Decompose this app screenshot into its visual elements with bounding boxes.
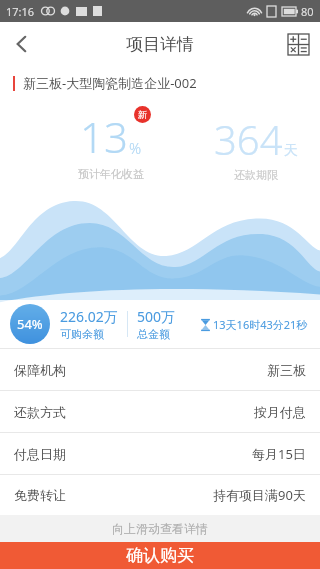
staticText: 保障机构	[14, 362, 66, 378]
staticText: 还款方式	[14, 404, 66, 420]
staticText: 每月15日	[252, 445, 306, 463]
staticText: 付息日期	[14, 446, 66, 462]
staticText: 天	[284, 142, 298, 160]
button[interactable]: 确认购买	[0, 542, 320, 569]
button[interactable]: 保障机构	[0, 349, 320, 390]
staticText: 80	[301, 4, 314, 19]
staticText: 确认购买	[126, 545, 194, 566]
staticText: 可购余额	[60, 327, 104, 341]
staticText: 按月付息	[254, 404, 306, 420]
staticText: 364	[214, 112, 283, 166]
staticText: 预计年化收益	[78, 167, 144, 181]
button[interactable]: 还款方式	[0, 391, 320, 432]
staticText: 17:16	[6, 4, 35, 19]
staticText: 新	[138, 109, 147, 120]
staticText: 54%	[17, 315, 43, 333]
staticText: 项目详情	[126, 34, 194, 55]
staticText: 13天16时43分21秒	[213, 317, 308, 332]
staticText: 向上滑动查看详情	[112, 521, 208, 536]
staticText: 总金额	[137, 327, 170, 341]
button[interactable]: 付息日期	[0, 433, 320, 474]
button[interactable]: Calculator	[276, 22, 320, 66]
staticText: 新三板-大型陶瓷制造企业-002	[23, 74, 197, 92]
staticText: 持有项目满90天	[213, 486, 306, 504]
staticText: 免费转让	[14, 487, 66, 503]
staticText: 500万	[137, 307, 176, 326]
staticText: 226.02万	[60, 307, 118, 326]
staticText: 13	[80, 108, 128, 165]
button[interactable]: 免费转让	[0, 475, 320, 515]
staticText: %	[129, 138, 142, 158]
staticText: 还款期限	[234, 168, 278, 182]
button[interactable]: Back	[0, 22, 44, 66]
staticText: 新三板	[267, 362, 306, 378]
